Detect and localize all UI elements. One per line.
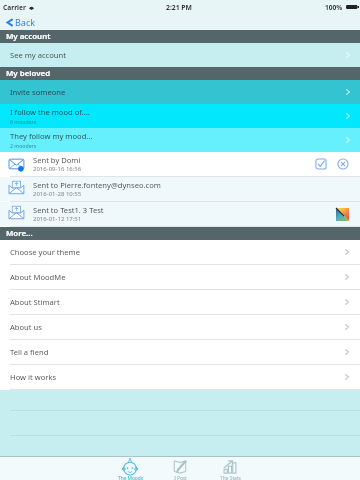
staticText: Sent to Test1. 3 Test — [33, 205, 104, 215]
staticText: Tell a fiend — [10, 347, 49, 357]
staticText: Back — [15, 16, 36, 28]
button[interactable]: Sent to Pierre.fonteny@dynseo.com — [0, 177, 360, 201]
staticText: Invite someone — [10, 87, 66, 97]
staticText: 6 mooders — [10, 118, 37, 125]
staticText: I follow the mood of.... — [10, 107, 90, 117]
button[interactable]: The Stats — [205, 457, 255, 480]
button[interactable]: How it works — [0, 365, 360, 389]
button[interactable]: Sent by Domi — [0, 152, 360, 176]
staticText: The Stats — [220, 475, 241, 480]
button[interactable]: The Moods — [105, 457, 155, 480]
button[interactable]: Decline — [337, 158, 349, 170]
staticText: 2 mooders — [10, 142, 37, 149]
staticText: 2016-01-12 17:51 — [33, 215, 82, 223]
staticText: My beloved — [6, 68, 51, 79]
staticText: How it works — [10, 372, 57, 382]
button[interactable]: Tell a fiend — [0, 340, 360, 364]
button[interactable]: I Post — [155, 457, 205, 480]
staticText: My account — [6, 31, 51, 42]
button[interactable]: Sent to Test1. 3 Test — [0, 202, 360, 226]
staticText: Choose your theme — [10, 247, 80, 257]
staticText: 2016-09-16 16:56 — [33, 165, 82, 173]
staticText: About MoodMe — [10, 272, 66, 282]
button[interactable]: Choose your theme — [0, 240, 360, 264]
staticText: They follow my mood... — [10, 131, 93, 141]
staticText: Sent to Pierre.fonteny@dynseo.com — [33, 180, 161, 190]
staticText: See my account — [10, 50, 66, 60]
staticText: Sent by Domi — [33, 155, 81, 165]
staticText: About Stimart — [10, 297, 60, 307]
staticText: I Post — [174, 475, 187, 480]
staticText: The Moods — [118, 475, 143, 480]
button[interactable]: They follow my mood... — [0, 128, 360, 152]
button[interactable]: Accept — [315, 158, 327, 170]
button[interactable]: See my account — [0, 43, 360, 67]
button[interactable]: About us — [0, 315, 360, 339]
button[interactable]: About MoodMe — [0, 265, 360, 289]
button[interactable]: Invite someone — [0, 80, 360, 104]
button[interactable]: Back — [0, 14, 44, 30]
staticText: 2:21 PM — [166, 3, 192, 12]
staticText: Carrier — [3, 3, 26, 12]
staticText: More... — [6, 228, 33, 239]
button[interactable]: I follow the mood of.... — [0, 104, 360, 128]
staticText: About us — [10, 322, 42, 332]
button[interactable]: About Stimart — [0, 290, 360, 314]
staticText: 2016-01-28 10:55 — [33, 190, 82, 198]
staticText: 100% — [325, 3, 343, 12]
